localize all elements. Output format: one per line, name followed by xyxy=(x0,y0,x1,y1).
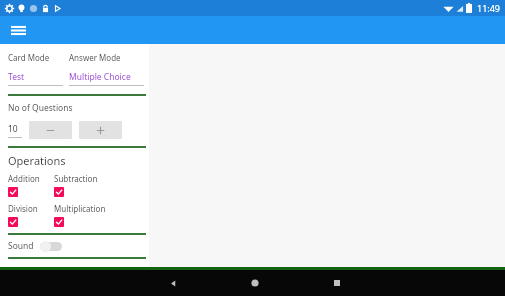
button[interactable]: Multiplication xyxy=(54,203,124,227)
button[interactable]: Addition xyxy=(8,173,50,197)
staticText: Multiple Choice xyxy=(69,71,131,83)
staticText: Card Mode xyxy=(8,52,63,63)
staticText: Test xyxy=(8,71,25,83)
button[interactable]: 10 xyxy=(8,123,22,138)
staticText: Sound xyxy=(8,240,34,252)
button[interactable]: Test xyxy=(8,71,63,86)
button[interactable]: Multiple Choice xyxy=(69,71,144,86)
staticText: Multiplication xyxy=(54,203,106,214)
button[interactable]: Open navigation menu xyxy=(7,19,29,41)
button[interactable]: Division xyxy=(8,203,50,227)
button[interactable]: Sound xyxy=(8,240,62,252)
staticText: Division xyxy=(8,203,38,214)
staticText: Answer Mode xyxy=(69,52,144,63)
staticText: 10 xyxy=(8,123,18,135)
staticText: Subtraction xyxy=(54,173,98,184)
staticText: No of Questions xyxy=(8,102,73,114)
button[interactable]: Increase number of questions xyxy=(79,121,122,139)
staticText: Addition xyxy=(8,173,40,184)
button[interactable]: Back xyxy=(160,270,186,296)
button[interactable]: Subtraction xyxy=(54,173,124,197)
staticText: 11:49 xyxy=(477,2,501,14)
staticText: Operations xyxy=(8,153,66,168)
button[interactable]: Home xyxy=(242,270,268,296)
button[interactable]: Decrease number of questions xyxy=(29,121,72,139)
button[interactable]: Recent apps xyxy=(324,270,350,296)
button[interactable]: Sound off xyxy=(40,241,62,252)
